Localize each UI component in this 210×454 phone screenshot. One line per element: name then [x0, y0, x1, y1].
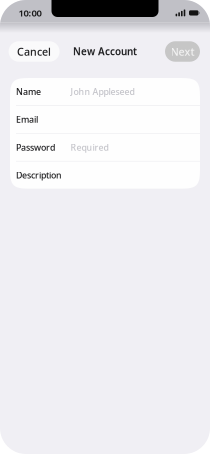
button[interactable]: Name: [10, 78, 200, 105]
staticText: 10:00: [18, 6, 41, 19]
button[interactable]: Cancel: [9, 41, 60, 62]
staticText: Description: [16, 169, 62, 181]
staticText: Name: [16, 86, 41, 98]
staticText: New Account: [73, 45, 137, 58]
staticText: Password: [16, 141, 55, 153]
staticText: Cancel: [17, 44, 51, 59]
button[interactable]: Next: [165, 41, 200, 62]
button[interactable]: Description: [10, 162, 200, 189]
staticText: Email: [16, 113, 38, 125]
staticText: John Appleseed: [70, 86, 134, 98]
staticText: Required: [70, 141, 108, 153]
button[interactable]: Password: [10, 134, 200, 161]
button[interactable]: Email: [10, 106, 200, 133]
staticText: Next: [170, 44, 194, 59]
